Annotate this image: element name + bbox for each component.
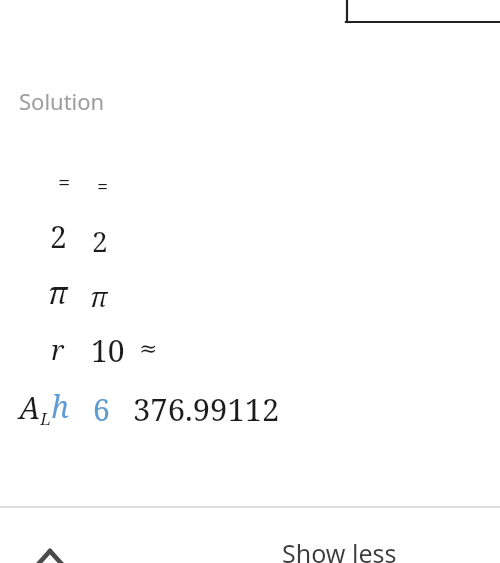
staticText: r <box>51 330 65 368</box>
staticText: Solution <box>19 86 105 116</box>
staticText: 10 <box>91 330 125 371</box>
staticText: 6 <box>93 389 110 430</box>
staticText: π <box>90 278 108 315</box>
staticText: Show less <box>282 536 397 563</box>
staticText: h <box>51 386 69 427</box>
staticText: ≈ <box>139 336 158 362</box>
staticText: = <box>97 173 109 200</box>
staticText: 376.99112 <box>133 388 280 430</box>
staticText: = <box>58 166 71 196</box>
button[interactable]: Show less <box>0 508 500 563</box>
button[interactable]: Show less <box>22 520 78 563</box>
staticText: π <box>48 272 68 313</box>
staticText: AL <box>19 387 51 430</box>
staticText: 2 <box>50 216 67 257</box>
staticText: 2 <box>92 222 108 260</box>
